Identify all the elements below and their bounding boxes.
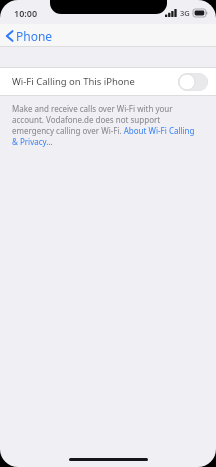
button[interactable]: Phone (0, 25, 61, 47)
staticText: Make and receive calls over Wi-Fi with y… (12, 103, 202, 147)
button[interactable]: Wi-Fi Calling on This iPhone (0, 68, 216, 95)
button[interactable]: Wi-Fi Calling toggle, off (178, 73, 208, 91)
staticText: 10:00 (14, 7, 38, 19)
staticText: Wi-Fi Calling on This iPhone (12, 75, 135, 88)
staticText: Phone (16, 28, 53, 44)
staticText: 3G (180, 8, 190, 18)
button[interactable]: Make and receive calls over Wi-Fi with y… (0, 96, 216, 147)
